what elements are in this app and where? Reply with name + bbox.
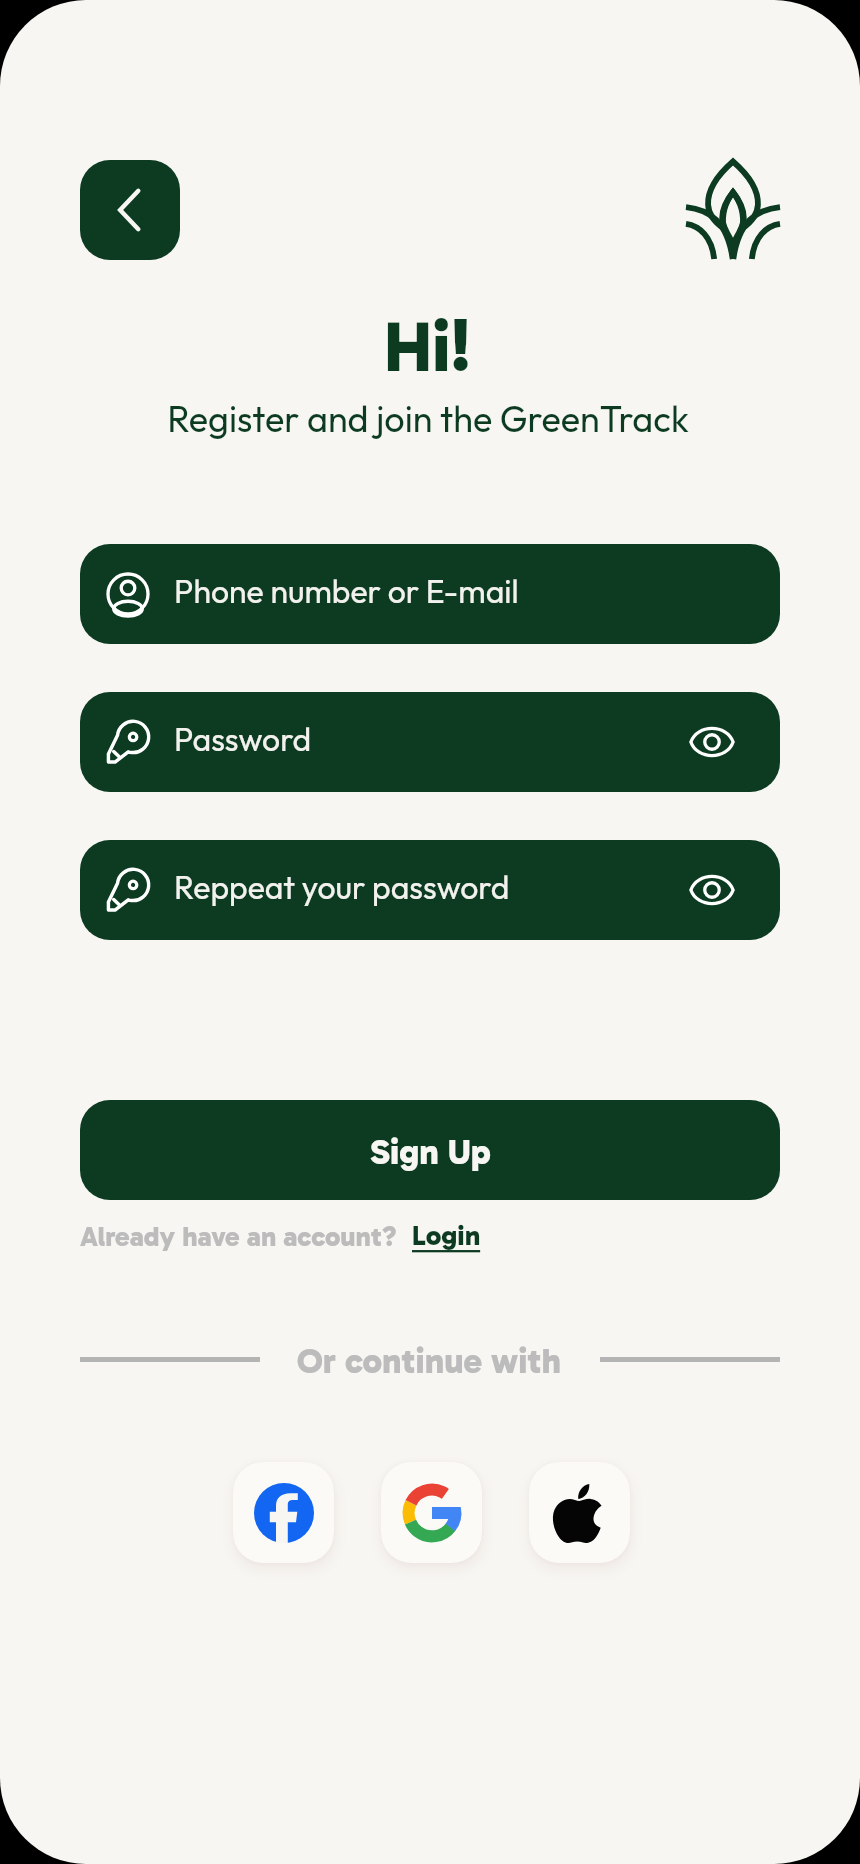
staticText: Login [412, 1219, 481, 1253]
button[interactable]: Reppeat your password [80, 840, 780, 940]
button[interactable]: Show password [676, 706, 748, 778]
button[interactable]: Password [80, 692, 780, 792]
staticText: Already have an account? [80, 1220, 397, 1253]
button[interactable]: Continue with Facebook [233, 1462, 334, 1563]
staticText: Register and join the GreenTrack [167, 396, 689, 441]
staticText: Password [174, 719, 312, 759]
button[interactable]: Continue with Apple [529, 1462, 630, 1563]
staticText: Or continue with [297, 1340, 562, 1382]
staticText: Reppeat your password [174, 867, 510, 907]
button[interactable]: Login [412, 1219, 481, 1253]
staticText: Phone number or E-mail [174, 571, 519, 611]
button[interactable]: Phone number or E-mail [80, 544, 780, 644]
button[interactable]: Show password [676, 854, 748, 926]
button[interactable]: Back [80, 160, 180, 260]
staticText: Sign Up [370, 1131, 491, 1173]
button[interactable]: Sign Up [80, 1100, 780, 1200]
staticText: Hi! [384, 304, 471, 389]
button[interactable]: Continue with Google [381, 1462, 482, 1563]
